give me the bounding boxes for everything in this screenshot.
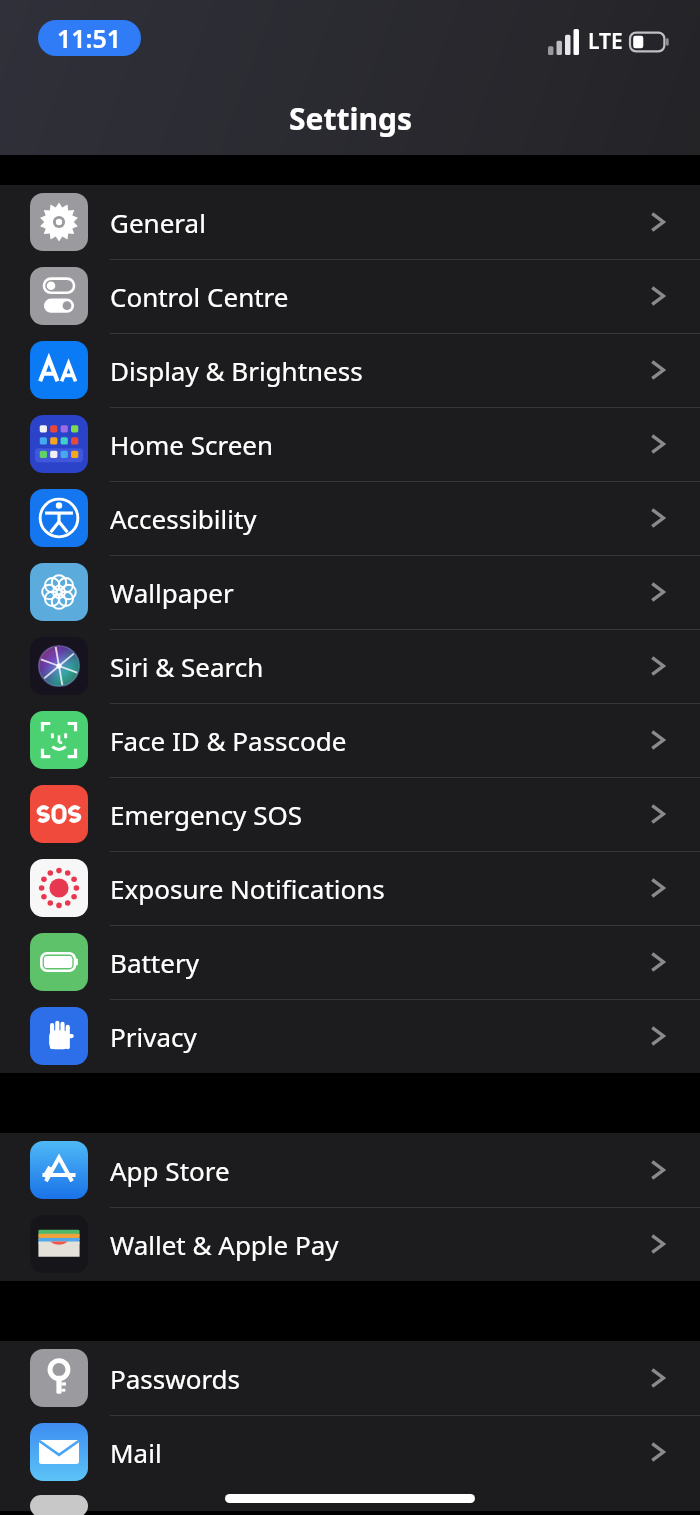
staticText: Battery bbox=[110, 945, 199, 980]
button[interactable]: App Store bbox=[0, 1133, 700, 1207]
button[interactable]: Mail bbox=[0, 1415, 700, 1489]
button[interactable]: Active call, 11:51 bbox=[38, 20, 141, 56]
staticText: General bbox=[110, 205, 206, 240]
staticText: LTE bbox=[588, 27, 623, 56]
button[interactable]: Wallpaper bbox=[0, 555, 700, 629]
button[interactable]: Passwords bbox=[0, 1341, 700, 1415]
staticText: 11:51 bbox=[57, 21, 122, 55]
button[interactable]: Siri & Search bbox=[0, 629, 700, 703]
button[interactable]: Home Screen bbox=[0, 407, 700, 481]
staticText: Accessibility bbox=[110, 501, 257, 536]
button[interactable]: Battery bbox=[0, 925, 700, 999]
button[interactable]: Emergency SOS bbox=[0, 777, 700, 851]
button[interactable]: Display & Brightness bbox=[0, 333, 700, 407]
staticText: App Store bbox=[110, 1153, 230, 1188]
button[interactable]: Accessibility bbox=[0, 481, 700, 555]
button[interactable]: Face ID & Passcode bbox=[0, 703, 700, 777]
staticText: Privacy bbox=[110, 1019, 197, 1054]
staticText: Emergency SOS bbox=[110, 797, 302, 832]
button[interactable]: General bbox=[0, 185, 700, 259]
staticText: Siri & Search bbox=[110, 649, 264, 684]
button[interactable]: Control Centre bbox=[0, 259, 700, 333]
button[interactable]: Wallet & Apple Pay bbox=[0, 1207, 700, 1281]
staticText: Wallet & Apple Pay bbox=[110, 1227, 339, 1262]
button[interactable]: Privacy bbox=[0, 999, 700, 1073]
staticText: Wallpaper bbox=[110, 575, 234, 610]
staticText: Control Centre bbox=[110, 279, 289, 314]
staticText: Face ID & Passcode bbox=[110, 723, 347, 758]
staticText: Mail bbox=[110, 1435, 162, 1470]
button[interactable]: Exposure Notifications bbox=[0, 851, 700, 925]
staticText: Display & Brightness bbox=[110, 353, 363, 388]
staticText: Home Screen bbox=[110, 427, 274, 462]
staticText: Exposure Notifications bbox=[110, 871, 385, 906]
staticText: Passwords bbox=[110, 1361, 241, 1396]
staticText: Settings bbox=[289, 98, 412, 139]
